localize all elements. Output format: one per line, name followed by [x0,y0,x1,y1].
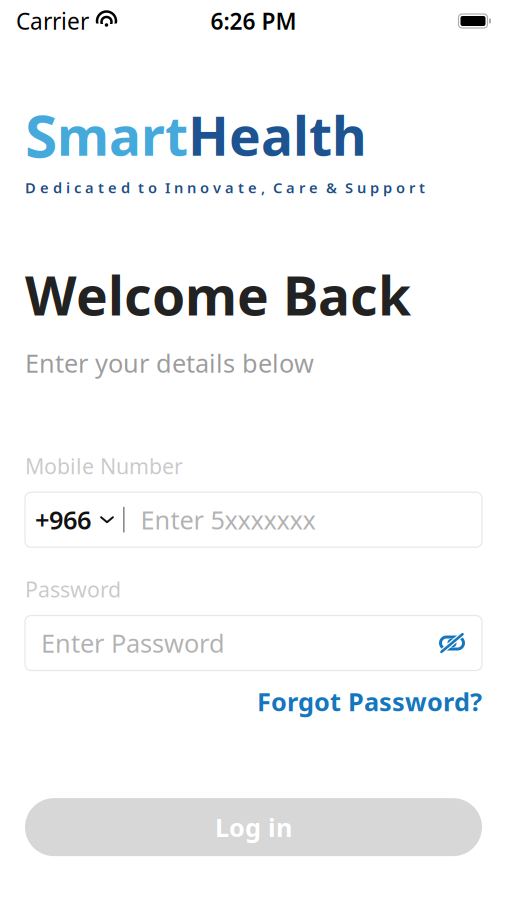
button[interactable]: Show password [432,623,472,663]
staticText: Enter 5xxxxxxx [141,503,316,536]
staticText: 6:26 PM [210,6,296,36]
staticText: Log in [215,810,292,844]
staticText: +966 [35,503,91,536]
staticText: mart [57,99,188,170]
staticText: Mobile Number [25,452,183,480]
staticText: Carrier [16,6,89,36]
staticText: S [25,96,57,174]
staticText: Enter your details below [25,346,314,380]
button[interactable]: Forgot Password? [257,684,482,718]
staticText: Forgot Password? [257,684,482,718]
staticText: Password [25,575,121,603]
staticText: Welcome Back [25,259,411,330]
staticText: Health [188,99,367,170]
staticText: Enter Password [41,626,225,660]
button[interactable]: Log in [25,798,482,856]
staticText: D e d i c a t e d t o I n n o v a t e , … [25,178,425,197]
button[interactable]: +966 [25,493,119,546]
